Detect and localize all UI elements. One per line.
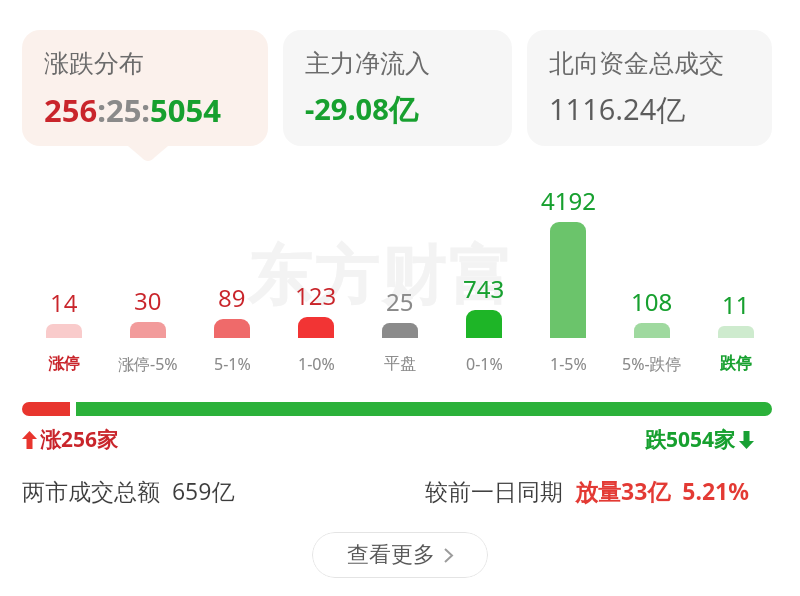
staticText: 123 — [295, 279, 337, 311]
other: 上涨 — [22, 431, 37, 449]
staticText: 查看更多 — [347, 541, 435, 569]
staticText: 89 — [218, 281, 246, 313]
staticText: 108 — [631, 285, 673, 317]
button[interactable]: 查看更多 — [312, 532, 488, 578]
staticText: 涨停 — [48, 354, 80, 374]
staticText: 1-0% — [298, 353, 335, 375]
staticText: 涨256家 — [40, 425, 119, 454]
other: 下跌 — [739, 431, 754, 449]
staticText: 东方财富 — [246, 236, 514, 317]
staticText: 5%-跌停 — [622, 353, 682, 375]
staticText: 4192 — [541, 184, 596, 216]
staticText: 30 — [134, 284, 162, 316]
staticText: 较前一日同期 — [425, 475, 575, 506]
staticText: 1-5% — [550, 353, 587, 375]
staticText: 涨停-5% — [118, 353, 178, 375]
staticText: 两市成交总额 659亿 — [22, 475, 235, 506]
button[interactable]: 主力净流入 — [283, 30, 512, 146]
staticText: -29.08亿 — [305, 89, 418, 129]
staticText: 1116.24亿 — [549, 89, 686, 129]
button[interactable]: 上涨 — [22, 425, 119, 454]
staticText: 涨跌分布 — [44, 48, 144, 79]
staticText: 256:25:5054 — [44, 89, 222, 131]
staticText: 平盘 — [384, 354, 416, 374]
staticText: 跌停 — [720, 354, 752, 374]
button[interactable]: 北向资金总成交 — [527, 30, 772, 146]
button[interactable]: 跌5054家 — [645, 425, 754, 454]
staticText: 743 — [463, 272, 505, 304]
button[interactable]: 涨跌分布 — [22, 30, 268, 146]
staticText: 跌5054家 — [645, 425, 736, 454]
staticText: 5-1% — [214, 353, 251, 375]
staticText: 北向资金总成交 — [549, 48, 724, 79]
staticText: 11 — [722, 288, 750, 320]
staticText: 25 — [386, 285, 414, 317]
staticText: 放量33亿 5.21% — [575, 475, 749, 506]
staticText: 14 — [50, 286, 78, 318]
staticText: 0-1% — [466, 353, 503, 375]
staticText: 主力净流入 — [305, 48, 430, 79]
